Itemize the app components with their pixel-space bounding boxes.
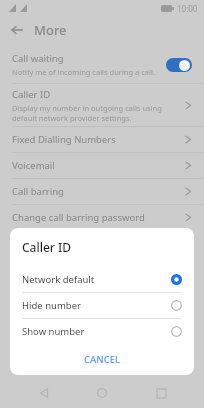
button[interactable]: Network default — [10, 267, 194, 292]
button[interactable]: Change call barring password — [0, 205, 204, 230]
button[interactable]: Show number — [10, 319, 194, 344]
staticText: Show number — [22, 325, 171, 338]
button[interactable]: Call barring — [0, 179, 204, 204]
button[interactable]: Back — [6, 19, 28, 41]
staticText: Call barring — [12, 185, 185, 198]
staticText: Caller ID — [12, 88, 51, 101]
staticText: 10:00 — [177, 3, 198, 14]
button[interactable]: Call waiting — [0, 46, 204, 83]
button[interactable]: Hide number — [10, 293, 194, 318]
button[interactable]: Recent apps — [146, 378, 176, 408]
button[interactable]: Fixed Dialling Numbers — [0, 127, 204, 152]
staticText: CANCEL — [84, 353, 121, 366]
staticText: Display my number in outgoing calls usin… — [12, 103, 179, 123]
staticText: Voicemail — [12, 159, 185, 172]
staticText: Change call barring password — [12, 211, 185, 224]
button[interactable]: CANCEL — [76, 350, 129, 369]
button[interactable]: Call waiting toggle — [166, 58, 192, 72]
button[interactable]: Caller ID — [0, 84, 204, 126]
staticText: Network default — [22, 273, 171, 286]
staticText: Call waiting — [12, 52, 64, 65]
staticText: Caller ID — [22, 239, 72, 255]
button[interactable]: Home — [87, 378, 117, 408]
staticText: Fixed Dialling Numbers — [12, 133, 185, 146]
staticText: Notify me of incoming calls during a cal… — [12, 67, 155, 77]
button[interactable]: Back — [29, 378, 59, 408]
staticText: More — [34, 21, 67, 39]
staticText: Hide number — [22, 299, 171, 312]
button[interactable]: Voicemail — [0, 153, 204, 178]
